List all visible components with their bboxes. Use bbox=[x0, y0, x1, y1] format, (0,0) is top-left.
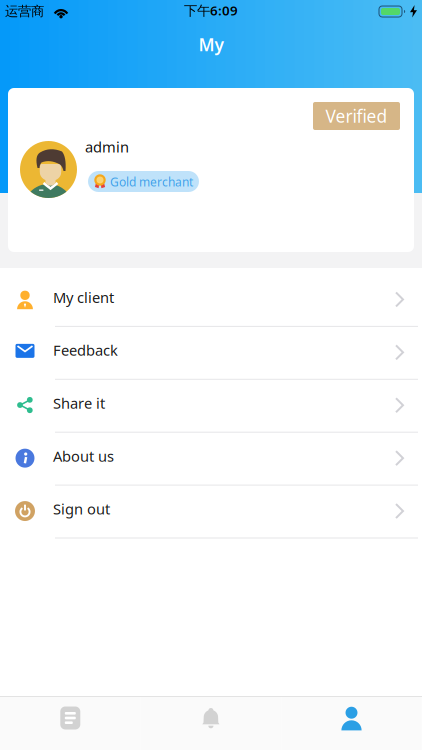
button[interactable]: Feedback bbox=[0, 326, 422, 379]
staticText: Verified bbox=[325, 104, 387, 127]
staticText: Share it bbox=[53, 393, 105, 413]
staticText: Feedback bbox=[53, 340, 118, 360]
button[interactable]: Sign out bbox=[0, 485, 422, 537]
button[interactable]: Orders bbox=[0, 697, 141, 750]
staticText: About us bbox=[53, 446, 114, 466]
staticText: My client bbox=[53, 287, 114, 307]
staticText: Sign out bbox=[53, 499, 110, 519]
button[interactable]: My client bbox=[0, 273, 422, 326]
button[interactable]: Share it bbox=[0, 379, 422, 432]
staticText: admin bbox=[85, 137, 129, 156]
staticText: 下午6:09 bbox=[184, 1, 238, 19]
staticText: 运营商 bbox=[5, 3, 44, 19]
button[interactable]: My bbox=[281, 697, 422, 750]
staticText: Gold merchant bbox=[110, 174, 193, 190]
button[interactable]: About us bbox=[0, 432, 422, 485]
staticText: My bbox=[198, 33, 223, 56]
button[interactable]: Notifications bbox=[141, 697, 281, 750]
